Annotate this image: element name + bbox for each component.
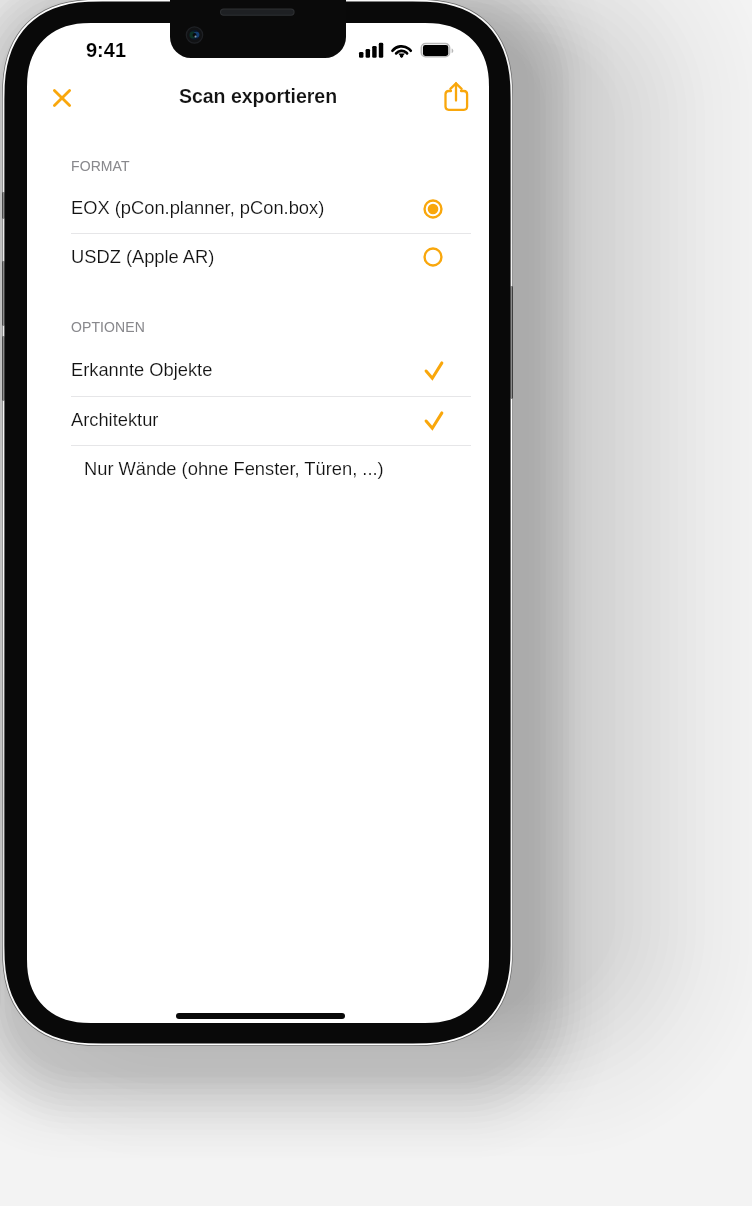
button[interactable]: Architektur (27, 395, 489, 443)
staticText: FORMAT (71, 158, 130, 174)
staticText: 9:41 (86, 39, 127, 61)
staticText: Architektur (71, 409, 159, 429)
staticText: Nur Wände (ohne Fenster, Türen, ...) (84, 458, 384, 478)
staticText: Erkannte Objekte (71, 359, 213, 379)
button[interactable]: EOX (pCon.planner, pCon.box) (27, 183, 489, 231)
button[interactable]: Nur Wände (ohne Fenster, Türen, ...) (27, 444, 489, 492)
button[interactable]: Teilen (438, 79, 474, 115)
staticText: Scan exportieren (27, 85, 489, 107)
staticText: EOX (pCon.planner, pCon.box) (71, 197, 325, 217)
button[interactable]: Erkannte Objekte (27, 345, 489, 393)
button[interactable]: Schließen (44, 80, 80, 116)
staticText: USDZ (Apple AR) (71, 246, 215, 266)
staticText: OPTIONEN (71, 319, 145, 335)
button[interactable]: USDZ (Apple AR) (27, 232, 489, 280)
